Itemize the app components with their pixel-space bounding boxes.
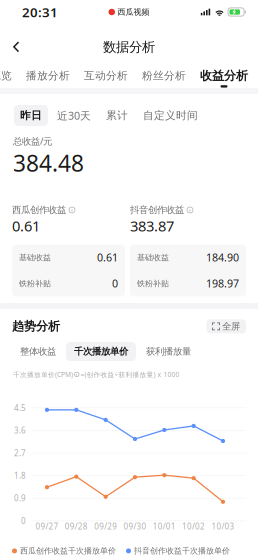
staticText: 互动分析: [84, 69, 128, 82]
staticText: 0.9: [14, 493, 26, 503]
staticText: 抖音创作收益: [130, 204, 184, 216]
staticText: 09/29: [94, 521, 117, 532]
staticText: 基础收益: [19, 253, 51, 262]
staticText: 0: [21, 515, 26, 526]
staticText: 0.61: [97, 250, 118, 265]
button[interactable]: 全屏: [206, 319, 246, 333]
button[interactable]: 累计: [100, 105, 134, 126]
staticText: 09/27: [35, 521, 58, 532]
staticText: 10/02: [182, 521, 205, 532]
staticText: 整体收益: [20, 346, 56, 357]
staticText: 累计: [106, 109, 128, 122]
staticText: 播放分析: [26, 69, 70, 82]
staticText: 184.90: [206, 250, 239, 265]
button[interactable]: 近30天: [51, 105, 97, 126]
staticText: 198.97: [206, 276, 239, 291]
staticText: 2.7: [14, 448, 26, 458]
staticText: 收益分析: [200, 68, 248, 83]
button[interactable]: 概览: [0, 66, 19, 90]
staticText: =(创作收益÷获利播放量) x 1000: [80, 370, 179, 379]
staticText: 千次播放单价: [74, 346, 128, 357]
staticText: 20:31: [22, 3, 58, 21]
staticText: 09/30: [123, 521, 146, 532]
staticText: 10/03: [211, 521, 234, 532]
button[interactable]: 昨日: [14, 105, 48, 126]
staticText: 抖音创作收益千次播放单价: [134, 546, 230, 556]
staticText: 概览: [0, 69, 12, 82]
staticText: 千次播放单价(CPM): [13, 370, 73, 379]
button[interactable]: 互动分析: [77, 66, 135, 90]
staticText: 1.8: [14, 470, 26, 481]
staticText: 383.87: [130, 216, 174, 235]
staticText: 西瓜创作收益: [12, 204, 66, 216]
staticText: 铁粉补贴: [137, 279, 169, 288]
staticText: 全屏: [222, 321, 240, 332]
staticText: 自定义时间: [143, 109, 198, 122]
staticText: 0.61: [12, 216, 40, 235]
staticText: 昨日: [20, 109, 42, 122]
staticText: 数据分析: [103, 39, 155, 55]
staticText: 总收益/元: [13, 135, 52, 147]
button[interactable]: 获利播放量: [138, 342, 199, 361]
staticText: 10/01: [153, 521, 176, 532]
staticText: 基础收益: [137, 253, 169, 262]
staticText: 4.5: [14, 402, 26, 413]
staticText: 铁粉补贴: [19, 279, 51, 288]
staticText: 384.48: [13, 148, 84, 178]
staticText: 09/28: [65, 521, 88, 532]
staticText: 3.6: [14, 425, 26, 436]
staticText: 西瓜视频: [117, 7, 149, 17]
button[interactable]: 整体收益: [12, 342, 64, 361]
staticText: 趋势分析: [12, 319, 60, 334]
staticText: 近30天: [57, 108, 91, 123]
button[interactable]: 收益分析: [193, 66, 255, 90]
staticText: 粉丝分析: [142, 69, 186, 82]
button[interactable]: 粉丝分析: [135, 66, 193, 90]
staticText: 0: [112, 276, 118, 291]
button[interactable]: 播放分析: [19, 66, 77, 90]
staticText: 西瓜创作收益千次播放单价: [20, 546, 116, 556]
button[interactable]: Back: [0, 34, 33, 60]
staticText: 获利播放量: [146, 346, 191, 357]
button[interactable]: 千次播放单价: [66, 342, 136, 361]
button[interactable]: 自定义时间: [137, 105, 204, 126]
